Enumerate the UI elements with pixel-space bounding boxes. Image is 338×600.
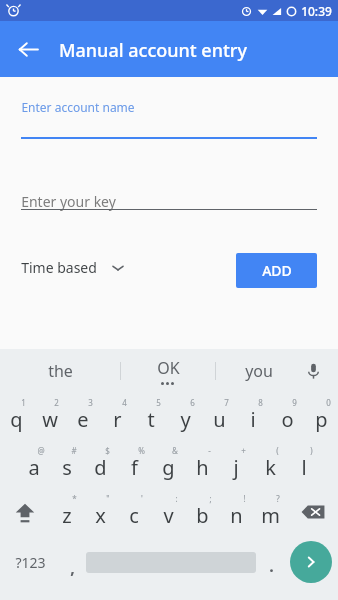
button[interactable]: !: [219, 488, 253, 536]
staticText: 8: [258, 397, 263, 408]
staticText: w: [42, 406, 58, 433]
staticText: 6: [190, 397, 195, 408]
staticText: ?: [276, 493, 280, 504]
staticText: p: [315, 406, 328, 433]
staticText: ): [310, 445, 313, 456]
button[interactable]: ?: [253, 488, 287, 536]
button[interactable]: ?123: [0, 536, 60, 588]
staticText: m: [261, 502, 280, 529]
staticText: #: [71, 445, 77, 456]
button[interactable]: *: [50, 488, 83, 536]
staticText: 10:39: [301, 3, 332, 19]
button[interactable]: Shift: [0, 488, 50, 536]
button[interactable]: ': [117, 488, 151, 536]
button[interactable]: ): [287, 440, 321, 488]
staticText: v: [163, 502, 174, 529]
button[interactable]: 5: [134, 392, 168, 440]
button[interactable]: Enter: [290, 541, 332, 583]
staticText: 2: [54, 397, 59, 408]
staticText: l: [301, 454, 307, 481]
button[interactable]: 1: [0, 392, 33, 440]
button[interactable]: +: [219, 440, 253, 488]
staticText: 5: [156, 397, 161, 408]
staticText: 4: [122, 397, 127, 408]
button[interactable]: 8: [236, 392, 270, 440]
button[interactable]: (: [253, 440, 287, 488]
staticText: a: [28, 454, 40, 481]
staticText: j: [233, 454, 239, 481]
staticText: g: [162, 454, 175, 481]
staticText: e: [77, 406, 89, 433]
staticText: the: [48, 360, 73, 382]
staticText: 7: [224, 397, 229, 408]
staticText: q: [10, 406, 23, 433]
button[interactable]: #: [50, 440, 83, 488]
button[interactable]: OK: [121, 349, 215, 392]
staticText: 9: [292, 397, 297, 408]
button[interactable]: 4: [100, 392, 134, 440]
button[interactable]: &: [151, 440, 185, 488]
button[interactable]: ADD: [236, 253, 317, 288]
staticText: +: [241, 445, 246, 456]
button[interactable]: $: [83, 440, 117, 488]
button[interactable]: ;: [185, 488, 219, 536]
button[interactable]: ": [83, 488, 117, 536]
button[interactable]: you: [216, 349, 302, 392]
staticText: x: [95, 502, 106, 529]
staticText: &: [172, 445, 178, 456]
button[interactable]: .: [258, 536, 284, 588]
button[interactable]: :: [151, 488, 185, 536]
button[interactable]: -: [185, 440, 219, 488]
button[interactable]: 7: [202, 392, 236, 440]
staticText: ,: [70, 557, 75, 579]
button[interactable]: 3: [66, 392, 100, 440]
staticText: you: [245, 360, 273, 382]
button[interactable]: 6: [168, 392, 202, 440]
staticText: h: [196, 454, 209, 481]
staticText: u: [213, 406, 226, 433]
button[interactable]: Time based: [21, 258, 125, 277]
staticText: y: [180, 406, 191, 433]
button[interactable]: the: [0, 349, 120, 392]
button[interactable]: Voice input: [298, 356, 328, 386]
button[interactable]: @: [17, 440, 50, 488]
staticText: ": [106, 493, 110, 504]
staticText: k: [265, 454, 276, 481]
staticText: d: [94, 454, 107, 481]
staticText: (: [276, 445, 279, 456]
staticText: .: [269, 555, 274, 577]
staticText: b: [196, 502, 209, 529]
staticText: r: [113, 406, 122, 433]
staticText: t: [147, 406, 155, 433]
button[interactable]: 9: [270, 392, 304, 440]
staticText: $: [105, 445, 110, 456]
staticText: OK: [157, 357, 180, 379]
button[interactable]: 2: [33, 392, 66, 440]
staticText: n: [230, 502, 243, 529]
staticText: 0: [326, 397, 331, 408]
staticText: ?123: [15, 553, 46, 572]
staticText: -: [208, 445, 211, 456]
staticText: Manual account entry: [59, 38, 247, 63]
staticText: s: [62, 454, 72, 481]
staticText: @: [37, 445, 45, 456]
staticText: !: [243, 493, 246, 504]
button[interactable]: Back: [8, 29, 48, 69]
button[interactable]: Backspace: [287, 488, 338, 536]
staticText: z: [62, 502, 72, 529]
staticText: Enter account name: [21, 99, 135, 115]
staticText: *: [72, 493, 77, 504]
button[interactable]: ,: [58, 536, 86, 588]
staticText: f: [131, 454, 138, 481]
staticText: %: [138, 445, 145, 456]
staticText: ADD: [262, 261, 292, 280]
staticText: Time based: [21, 258, 97, 277]
staticText: ;: [209, 493, 212, 504]
button[interactable]: 0: [304, 392, 338, 440]
staticText: Enter your key: [21, 192, 116, 211]
button[interactable]: %: [117, 440, 151, 488]
staticText: o: [281, 406, 294, 433]
staticText: ': [141, 493, 143, 504]
staticText: c: [129, 502, 139, 529]
